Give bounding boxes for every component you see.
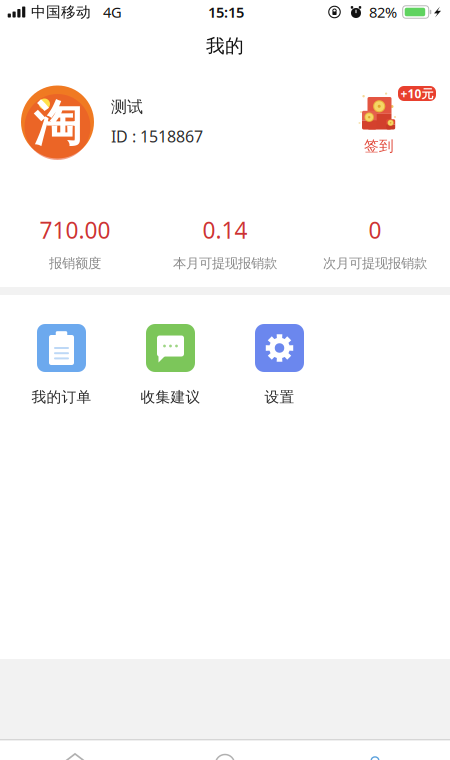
button[interactable]: 设置	[225, 324, 334, 406]
staticText: 0	[368, 215, 381, 245]
staticText: 15:15	[208, 2, 244, 22]
staticText: +10元	[400, 85, 433, 101]
button[interactable]: 首页	[0, 739, 150, 759]
staticText: 设置	[264, 388, 294, 406]
button[interactable]: 发现	[150, 739, 300, 758]
staticText: 0.14	[202, 215, 247, 245]
button[interactable]: 签到	[354, 87, 442, 157]
staticText: 本月可提现报销款	[173, 255, 277, 271]
staticText: 82%	[369, 2, 397, 22]
button[interactable]: 收集建议	[116, 324, 225, 406]
staticText: ID : 1518867	[111, 126, 203, 147]
staticText: 4G	[103, 2, 122, 22]
staticText: 我的	[206, 34, 244, 57]
staticText: 淘	[33, 94, 81, 153]
staticText: 次月可提现报销款	[323, 255, 427, 271]
button[interactable]: 我的订单	[7, 324, 116, 406]
staticText: 收集建议	[140, 388, 200, 406]
staticText: 签到	[364, 137, 394, 155]
staticText: 报销额度	[49, 255, 101, 271]
staticText: 中国移动	[31, 3, 91, 21]
staticText: 710.00	[39, 215, 110, 245]
staticText: 我的订单	[31, 388, 91, 406]
staticText: 测试	[111, 97, 143, 117]
